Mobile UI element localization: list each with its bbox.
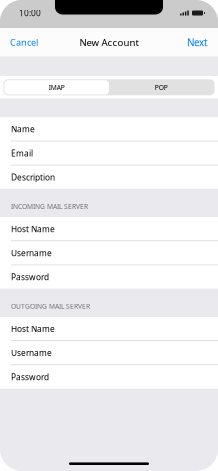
button[interactable]: Host Name <box>0 217 218 241</box>
staticText: Email <box>11 147 33 159</box>
button[interactable]: IMAP <box>4 80 109 94</box>
button[interactable]: Name <box>0 117 218 141</box>
button[interactable]: Cancel <box>0 28 48 57</box>
button[interactable]: Email <box>0 141 218 165</box>
staticText: Name <box>11 123 35 135</box>
staticText: Password <box>11 371 49 383</box>
staticText: Next <box>187 36 208 49</box>
staticText: POP <box>155 83 168 92</box>
staticText: Username <box>11 247 52 259</box>
button[interactable]: Description <box>0 166 218 189</box>
staticText: 10:00 <box>19 7 41 19</box>
staticText: IMAP <box>49 83 65 92</box>
staticText: Host Name <box>11 323 55 334</box>
button[interactable]: Password <box>0 365 218 389</box>
button[interactable]: Username <box>0 241 218 265</box>
staticText: Description <box>11 172 55 183</box>
button[interactable]: Password <box>0 265 218 289</box>
staticText: Password <box>11 271 49 283</box>
staticText: OUTGOING MAIL SERVER <box>11 302 90 311</box>
staticText: Username <box>11 347 52 358</box>
staticText: INCOMING MAIL SERVER <box>11 202 88 211</box>
button[interactable]: Username <box>0 341 218 364</box>
button[interactable]: Next <box>177 28 218 57</box>
button[interactable]: POP <box>109 80 214 94</box>
button[interactable]: Host Name <box>0 317 218 340</box>
staticText: Cancel <box>10 36 38 48</box>
staticText: Host Name <box>11 223 55 234</box>
staticText: New Account <box>79 36 138 49</box>
